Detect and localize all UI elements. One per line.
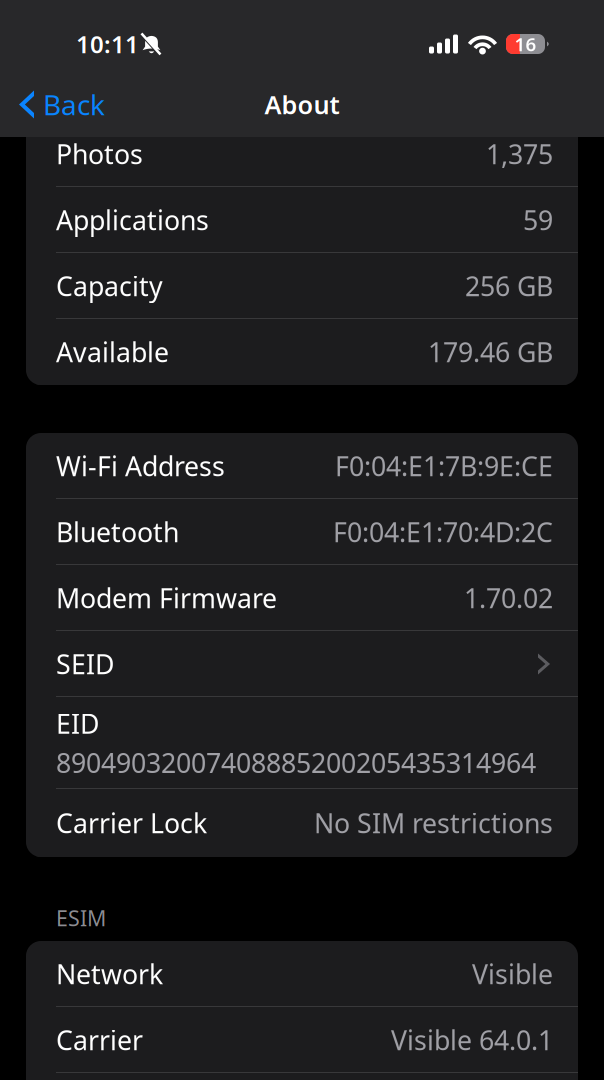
staticText: ESIM xyxy=(56,904,106,932)
staticText: EID xyxy=(56,706,99,741)
button[interactable]: Modem Firmware xyxy=(26,565,578,631)
button[interactable]: Wi-Fi Address xyxy=(26,433,578,499)
staticText: Back xyxy=(43,86,105,123)
button[interactable]: Carrier Lock xyxy=(26,789,578,857)
staticText: Modem Firmware xyxy=(56,580,277,616)
staticText: Visible 64.0.1 xyxy=(391,1022,553,1058)
staticText: Network xyxy=(56,956,163,992)
staticText: SEID xyxy=(56,646,114,682)
staticText: Available xyxy=(56,334,169,370)
staticText: 59 xyxy=(523,202,553,238)
staticText: About xyxy=(264,88,339,121)
button[interactable]: EID xyxy=(26,697,578,789)
button[interactable]: Back xyxy=(0,74,119,134)
button[interactable]: Carrier xyxy=(26,1007,578,1073)
staticText: Carrier xyxy=(56,1022,143,1058)
staticText: Bluetooth xyxy=(56,514,179,550)
staticText: 16 xyxy=(514,32,536,56)
staticText: 1.70.02 xyxy=(464,580,553,616)
button[interactable]: SEID xyxy=(26,631,578,697)
staticText: F0:04:E1:70:4D:2C xyxy=(333,514,553,550)
staticText: Capacity xyxy=(56,268,163,304)
button[interactable]: Bluetooth xyxy=(26,499,578,565)
staticText: Visible xyxy=(472,956,553,992)
staticText: Carrier Lock xyxy=(56,805,207,841)
button[interactable]: Network xyxy=(26,941,578,1007)
button[interactable]: Capacity xyxy=(26,253,578,319)
staticText: F0:04:E1:7B:9E:CE xyxy=(335,448,553,484)
staticText: 256 GB xyxy=(465,268,553,304)
staticText: 1,375 xyxy=(486,136,553,172)
staticText: Applications xyxy=(56,202,209,238)
staticText: 10:11 xyxy=(76,28,139,60)
staticText: 179.46 GB xyxy=(428,334,553,370)
staticText: No SIM restrictions xyxy=(314,805,553,841)
button[interactable]: Applications xyxy=(26,187,578,253)
button[interactable]: Photos xyxy=(26,121,578,187)
staticText: Wi-Fi Address xyxy=(56,448,225,484)
button[interactable]: Available xyxy=(26,319,578,385)
staticText: 89049032007408885200205435314964 xyxy=(56,745,536,780)
staticText: Photos xyxy=(56,136,143,172)
